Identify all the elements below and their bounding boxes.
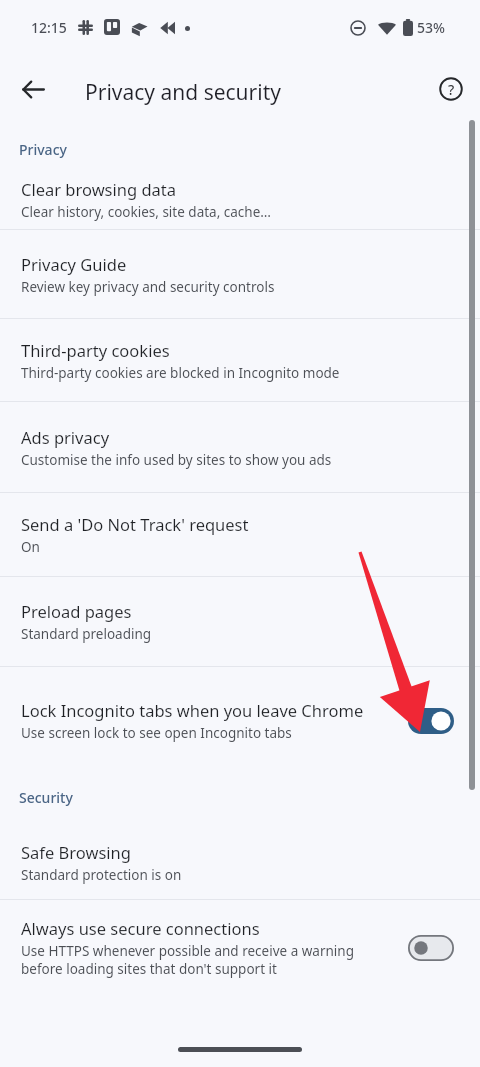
staticText: Privacy Guide: [21, 253, 127, 275]
staticText: Third-party cookies: [21, 339, 170, 361]
staticText: Ads privacy: [21, 426, 110, 448]
staticText: 12:15: [31, 18, 67, 37]
staticText: Always use secure connections: [21, 917, 260, 939]
button[interactable]: Lock Incognito tabs when you leave Chrom…: [0, 667, 480, 774]
staticText: Standard protection is on: [21, 866, 182, 884]
staticText: ?: [448, 80, 455, 99]
staticText: Use HTTPS whenever possible and receive …: [21, 942, 399, 978]
staticText: Clear history, cookies, site data, cache…: [21, 203, 271, 221]
staticText: Preload pages: [21, 600, 132, 622]
button[interactable]: Clear browsing data: [0, 169, 480, 229]
button[interactable]: Send a 'Do Not Track' request: [0, 493, 480, 576]
button[interactable]: Toggle on: [407, 705, 455, 737]
staticText: On: [21, 538, 40, 556]
button[interactable]: Ads privacy: [0, 402, 480, 492]
staticText: Privacy: [19, 140, 67, 159]
button[interactable]: Always use secure connections: [0, 900, 480, 995]
staticText: Standard preloading: [21, 625, 152, 643]
staticText: Safe Browsing: [21, 841, 131, 863]
staticText: Use screen lock to see open Incognito ta…: [21, 724, 292, 742]
button[interactable]: Toggle off: [407, 932, 455, 964]
staticText: Clear browsing data: [21, 178, 177, 200]
button[interactable]: Privacy Guide: [0, 230, 480, 318]
staticText: Privacy and security: [85, 78, 281, 107]
button[interactable]: Help: [427, 65, 475, 113]
staticText: Customise the info used by sites to show…: [21, 451, 332, 469]
staticText: Review key privacy and security controls: [21, 278, 275, 296]
staticText: Third-party cookies are blocked in Incog…: [21, 364, 340, 382]
button[interactable]: Safe Browsing: [0, 826, 480, 899]
staticText: Security: [19, 788, 73, 807]
button[interactable]: Preload pages: [0, 577, 480, 666]
staticText: Lock Incognito tabs when you leave Chrom…: [21, 699, 364, 721]
button[interactable]: Back: [9, 65, 57, 113]
button[interactable]: Third-party cookies: [0, 319, 480, 401]
staticText: 53%: [417, 18, 445, 37]
staticText: Send a 'Do Not Track' request: [21, 513, 249, 535]
